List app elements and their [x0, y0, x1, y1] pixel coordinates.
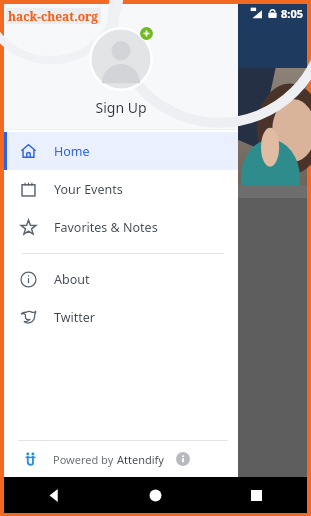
button[interactable]: About [4, 260, 238, 298]
button[interactable]: Recent apps [206, 477, 307, 513]
staticText: Home [54, 143, 90, 160]
button[interactable]: Twitter [4, 298, 238, 336]
staticText: About [54, 271, 90, 288]
button[interactable]: Sign Up [4, 4, 238, 129]
button[interactable]: Favorites & Notes [4, 208, 238, 246]
button[interactable]: Back [4, 477, 105, 513]
button[interactable]: Home [105, 477, 206, 513]
staticText: hack-cheat.org [8, 8, 99, 24]
button[interactable]: Your Events [4, 170, 238, 208]
staticText: Powered by [53, 452, 117, 467]
staticText: Attendify [117, 452, 164, 467]
staticText: Twitter [54, 309, 95, 326]
staticText: Sign Up [95, 98, 147, 117]
staticText: 8:05 [281, 6, 303, 21]
staticText: Favorites & Notes [54, 219, 158, 236]
staticText: Your Events [54, 181, 123, 198]
button[interactable]: Powered by [4, 441, 238, 477]
button[interactable]: Information [176, 452, 190, 466]
button[interactable]: Home [4, 132, 238, 170]
